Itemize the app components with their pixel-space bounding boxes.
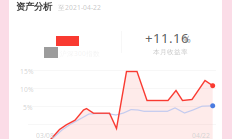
staticText: 15%: [20, 67, 34, 76]
staticText: +11.16: [145, 29, 189, 47]
staticText: %: [183, 33, 191, 45]
staticText: 04/22: [192, 131, 210, 139]
staticText: 10%: [20, 85, 34, 94]
staticText: 本月收益率: [153, 48, 188, 56]
staticText: 至2021-04-22: [58, 3, 101, 12]
staticText: 03/08: [36, 131, 54, 139]
staticText: 资产分析: [16, 1, 52, 12]
staticText: 5%: [23, 103, 33, 112]
